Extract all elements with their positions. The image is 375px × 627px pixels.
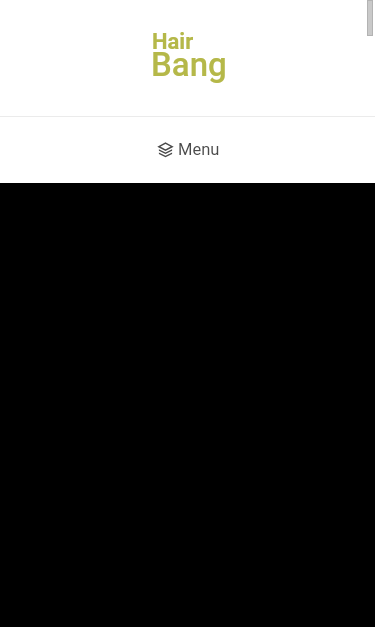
staticText: Menu bbox=[178, 140, 220, 159]
other: Open menu bbox=[158, 142, 173, 157]
staticText: Bang bbox=[151, 45, 227, 84]
button[interactable]: Open menu bbox=[0, 117, 375, 183]
staticText: Hair bbox=[152, 29, 194, 55]
button[interactable]: Hair bbox=[152, 28, 232, 84]
